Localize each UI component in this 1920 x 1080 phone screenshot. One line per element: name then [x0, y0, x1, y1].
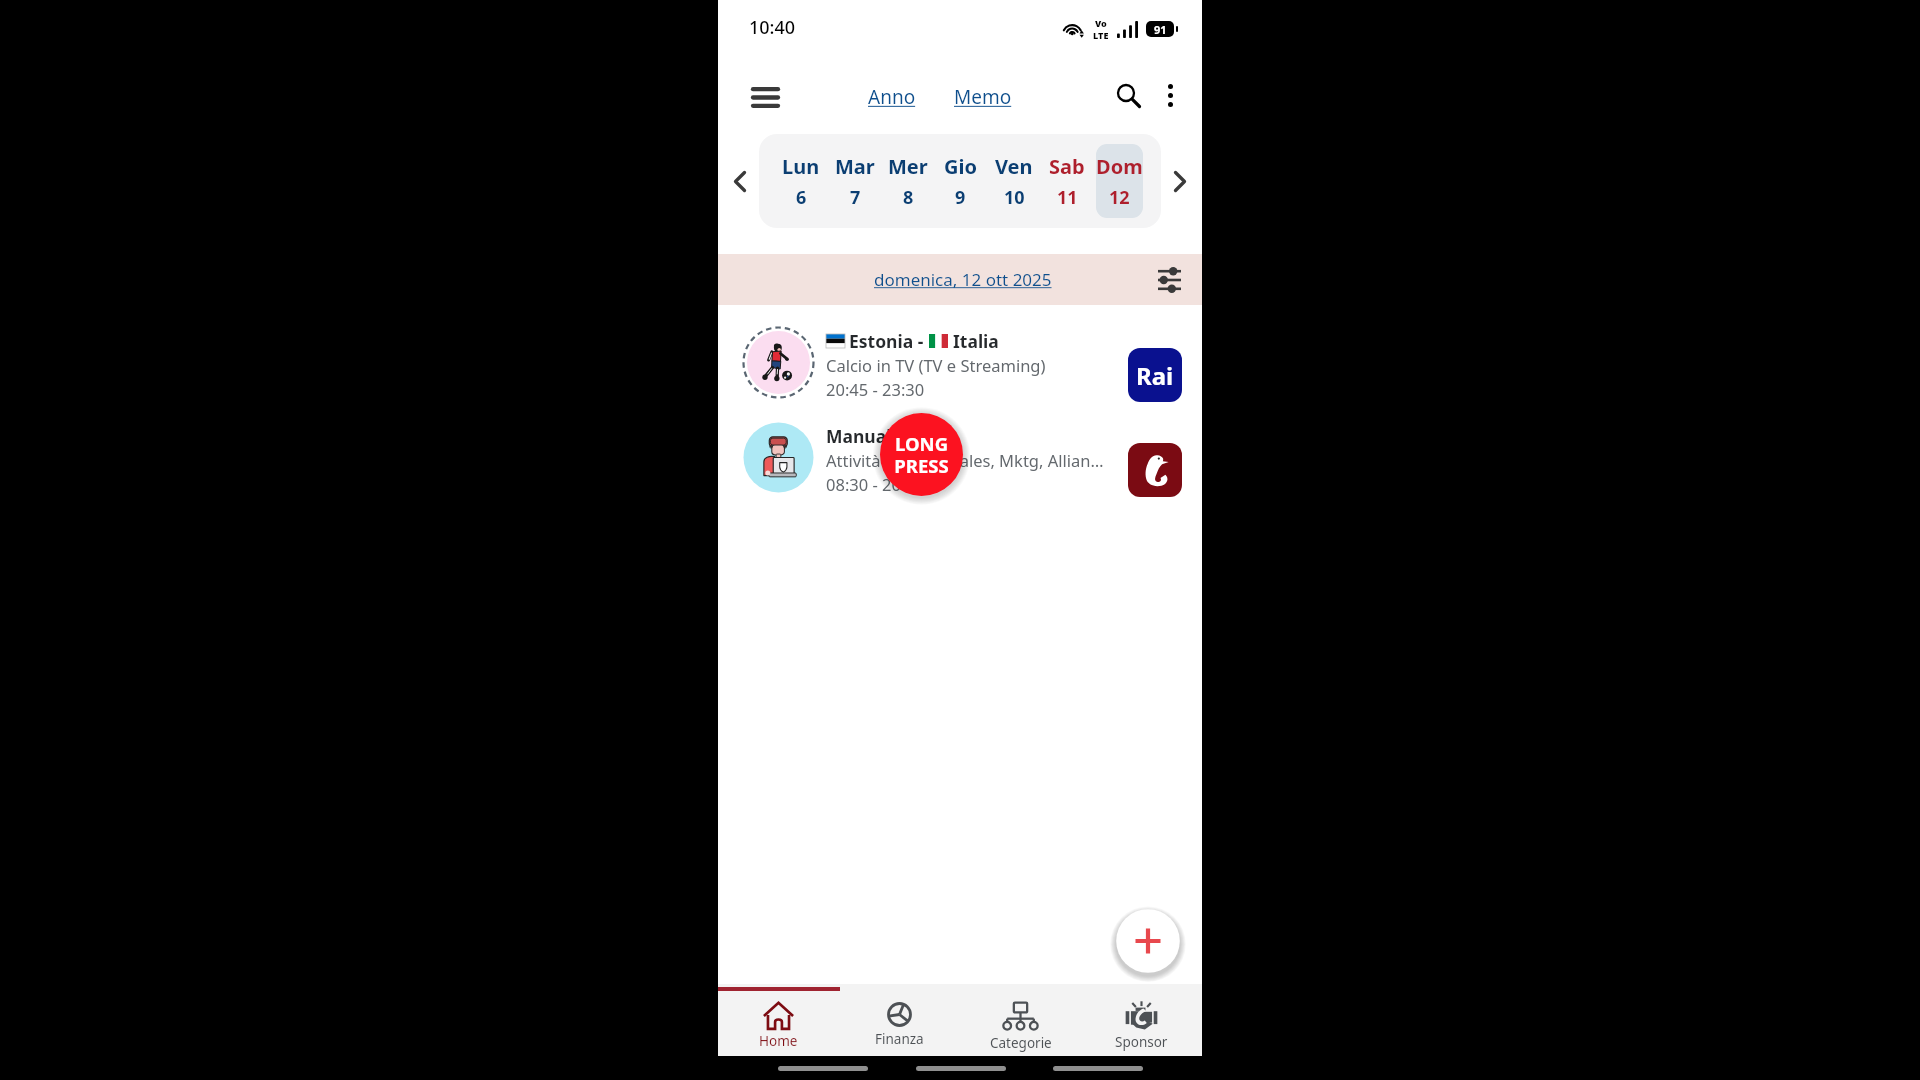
staticText: Dom [1096, 153, 1143, 180]
staticText: Sab [1049, 153, 1085, 180]
button[interactable]: Altre opzioni [1150, 75, 1190, 115]
staticText: Mar [835, 153, 875, 180]
staticText: Categorie [990, 1034, 1052, 1052]
button[interactable]: Settimana successiva [1163, 164, 1197, 198]
staticText: Rai [1136, 359, 1174, 392]
button[interactable]: Gio [937, 144, 984, 218]
staticText: Italia [953, 329, 999, 353]
button[interactable]: Cerca [1106, 73, 1150, 117]
staticText: Anno [868, 84, 916, 110]
staticText: 10 [1004, 185, 1025, 210]
button[interactable]: Settimana precedente [723, 164, 757, 198]
staticText: Finanza [875, 1030, 924, 1048]
button[interactable]: Lun [777, 144, 825, 218]
button[interactable]: Finanza [839, 991, 960, 1056]
staticText: Estonia - [849, 329, 924, 353]
staticText: domenica, 12 ott 2025 [874, 268, 1052, 291]
button[interactable]: Ven [990, 144, 1037, 218]
staticText: 91 [1154, 22, 1167, 37]
staticText: 20:45 - 23:30 [826, 378, 925, 400]
staticText: 6 [796, 185, 807, 210]
staticText: Sponsor [1115, 1033, 1168, 1051]
button[interactable]: Anno [864, 78, 920, 116]
staticText: 10:40 [749, 15, 796, 40]
button[interactable]: Menu [739, 71, 791, 123]
button[interactable]: Sponsor [1081, 991, 1202, 1056]
button[interactable]: Mer [884, 144, 931, 218]
button[interactable]: Manuale [718, 410, 1202, 505]
staticText: 11 [1057, 185, 1078, 210]
button[interactable]: Filtri [1151, 262, 1187, 298]
staticText: 9 [955, 185, 966, 210]
staticText: Gio [944, 153, 977, 180]
staticText: Vo [1095, 17, 1107, 29]
button[interactable]: Estonia - [718, 315, 1202, 410]
staticText: Ven [995, 153, 1033, 180]
staticText: 8 [903, 185, 914, 210]
button[interactable]: Aggiungi [1115, 908, 1181, 974]
button[interactable]: Memo [950, 78, 1016, 116]
staticText: Lun [782, 153, 820, 180]
staticText: 08:30 - 20:00 [826, 473, 925, 495]
staticText: LTE [1093, 29, 1109, 41]
button[interactable]: Home [718, 991, 839, 1056]
staticText: Home [759, 1032, 798, 1050]
staticText: 7 [850, 185, 861, 210]
staticText: 12 [1109, 185, 1130, 210]
staticText: Calcio in TV (TV e Streaming) [826, 354, 1046, 376]
button[interactable]: Categorie [960, 991, 1081, 1056]
button[interactable]: Dom [1096, 144, 1143, 218]
button[interactable]: Sab [1043, 144, 1090, 218]
staticText: Attività Azienda Sales, Mktg, Allian… [826, 449, 1104, 471]
staticText: Manuale [826, 424, 902, 448]
staticText: LONG PRESS [894, 431, 949, 479]
button[interactable]: domenica, 12 ott 2025 [871, 265, 1055, 294]
staticText: Memo [954, 84, 1012, 110]
staticText: Mer [888, 153, 928, 180]
button[interactable]: Mar [831, 144, 878, 218]
